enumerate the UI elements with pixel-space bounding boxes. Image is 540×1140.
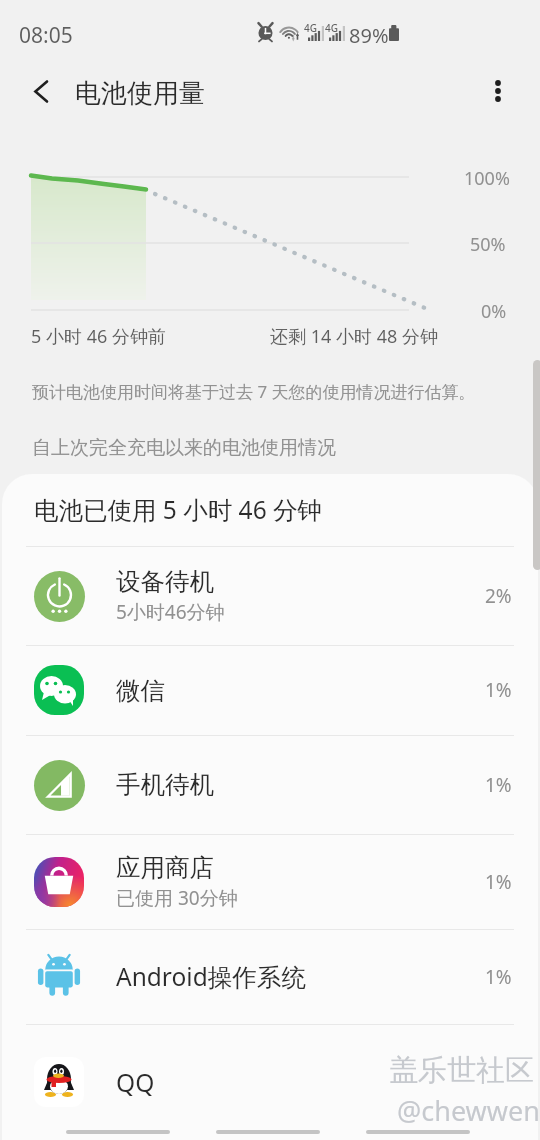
button[interactable]: Android操作系统	[2, 929, 538, 1024]
button[interactable]: 手机待机	[2, 735, 538, 834]
staticText: 电池已使用 5 小时 46 分钟	[34, 493, 323, 526]
button[interactable]: Back	[18, 68, 64, 114]
staticText: 电池使用量	[75, 77, 205, 110]
staticText: 50%	[470, 232, 506, 257]
staticText: 微信	[116, 675, 165, 706]
button[interactable]: 设备待机	[2, 546, 538, 645]
staticText: 2%	[485, 583, 512, 609]
staticText: Android操作系统	[116, 960, 306, 993]
staticText: 08:05	[19, 21, 73, 50]
staticText: 还剩 14 小时 48 分钟	[270, 324, 438, 349]
staticText: 设备待机	[116, 566, 214, 597]
staticText: 1%	[485, 964, 512, 990]
staticText: QQ	[116, 1066, 155, 1099]
staticText: 4G	[304, 21, 317, 35]
staticText: 5 小时 46 分钟前	[31, 324, 166, 349]
staticText: 已使用 30分钟	[116, 885, 238, 911]
staticText: 4G	[325, 21, 338, 35]
staticText: 0%	[481, 299, 507, 324]
button[interactable]: 微信	[2, 645, 538, 735]
staticText: 5小时46分钟	[116, 599, 225, 625]
staticText: 1%	[485, 677, 512, 703]
staticText: 100%	[464, 166, 510, 191]
staticText: 应用商店	[116, 852, 214, 883]
staticText: 手机待机	[116, 769, 214, 800]
staticText: @chewwen	[397, 1092, 540, 1129]
staticText: 盖乐世社区	[389, 1052, 534, 1089]
button[interactable]: More options	[475, 68, 521, 114]
staticText: 预计电池使用时间将基于过去 7 天您的使用情况进行估算。	[32, 380, 476, 403]
staticText: 1%	[485, 772, 512, 798]
button[interactable]: 应用商店	[2, 834, 538, 929]
staticText: 1%	[485, 869, 512, 895]
staticText: 89%	[349, 22, 389, 49]
button[interactable]: QQ	[2, 1024, 538, 1140]
staticText: 自上次完全充电以来的电池使用情况	[32, 436, 336, 460]
